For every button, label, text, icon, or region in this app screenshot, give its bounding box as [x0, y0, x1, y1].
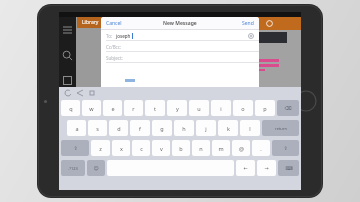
button[interactable]: Left [236, 160, 255, 176]
button[interactable]: p [255, 100, 275, 116]
button[interactable]: s [88, 120, 107, 136]
staticText: Library [82, 19, 99, 26]
staticText: r [132, 105, 135, 112]
staticText: p [263, 105, 267, 112]
button[interactable]: v [152, 140, 170, 156]
button[interactable]: Settings [266, 20, 273, 27]
button[interactable]: Shift [61, 140, 89, 156]
button[interactable]: l [240, 120, 260, 136]
button[interactable]: Menu [62, 25, 73, 36]
staticText: m [218, 145, 224, 152]
button[interactable]: x [112, 140, 130, 156]
staticText: z [99, 145, 102, 152]
button[interactable]: Undo [65, 90, 71, 96]
staticText: d [117, 125, 121, 132]
button[interactable]: Right [257, 160, 276, 176]
staticText: @ [239, 145, 244, 152]
button[interactable]: f [130, 120, 150, 136]
button[interactable]: Send [242, 20, 254, 27]
button[interactable]: n [192, 140, 210, 156]
staticText: f [139, 125, 141, 132]
button[interactable]: t [145, 100, 165, 116]
button[interactable]: b [172, 140, 190, 156]
button[interactable]: c [132, 140, 150, 156]
staticText: ⇧ [73, 145, 78, 151]
staticText: To: [106, 33, 113, 39]
staticText: c [140, 145, 143, 152]
staticText: ☺ [93, 165, 99, 171]
staticText: e [111, 105, 115, 112]
button[interactable]: Emoji [87, 160, 105, 176]
button[interactable]: Hide keyboard [278, 160, 299, 176]
button[interactable]: Favorites [62, 100, 73, 111]
button[interactable]: q [61, 100, 80, 116]
button[interactable]: @ [232, 140, 250, 156]
button[interactable]: Backspace [277, 100, 299, 116]
button[interactable]: y [167, 100, 187, 116]
staticText: . [260, 145, 262, 152]
staticText: w [89, 105, 94, 112]
button[interactable]: . [252, 140, 270, 156]
button[interactable]: .?123 [61, 160, 85, 176]
button[interactable]: Library [77, 17, 117, 28]
staticText: o [241, 105, 245, 112]
staticText: j [205, 125, 207, 132]
button[interactable]: Redo [77, 90, 83, 96]
staticText: i [220, 105, 222, 112]
button[interactable]: Cancel [106, 20, 122, 27]
button[interactable]: h [174, 120, 194, 136]
staticText: g [160, 125, 164, 132]
staticText: ⇧ [283, 145, 288, 151]
staticText: q [69, 105, 73, 112]
staticText: s [96, 125, 99, 132]
button[interactable]: w [82, 100, 101, 116]
staticText: New Message [163, 20, 197, 27]
button[interactable]: Add contact [248, 33, 254, 39]
staticText: Subject: [106, 55, 123, 61]
button[interactable]: m [212, 140, 230, 156]
button[interactable]: j [196, 120, 216, 136]
staticText: b [179, 145, 183, 152]
staticText: k [227, 125, 230, 132]
button[interactable]: Paste [89, 90, 95, 96]
button[interactable]: Home [295, 90, 317, 112]
button[interactable]: z [91, 140, 110, 156]
button[interactable]: Search [62, 50, 73, 61]
button[interactable]: d [109, 120, 128, 136]
button[interactable]: o [233, 100, 253, 116]
staticText: a [75, 125, 79, 132]
staticText: h [182, 125, 186, 132]
staticText: n [199, 145, 203, 152]
staticText: y [176, 105, 179, 112]
button[interactable]: r [124, 100, 143, 116]
button[interactable]: g [152, 120, 172, 136]
button[interactable]: i [211, 100, 231, 116]
button[interactable]: a [67, 120, 86, 136]
staticText: return [275, 126, 287, 131]
staticText: Cc/Bcc: [106, 44, 122, 50]
button[interactable]: return [262, 120, 299, 136]
button[interactable]: u [189, 100, 209, 116]
staticText: x [120, 145, 123, 152]
staticText: u [197, 105, 201, 112]
button[interactable]: k [218, 120, 238, 136]
button[interactable]: Documents [62, 75, 73, 86]
staticText: t [154, 105, 156, 112]
button[interactable]: To: [101, 30, 259, 41]
button[interactable]: Share [250, 20, 257, 27]
staticText: ← [243, 165, 248, 171]
staticText: joseph [116, 33, 131, 39]
button[interactable]: Subject: [101, 52, 259, 63]
button[interactable]: Cc/Bcc: [101, 41, 259, 52]
staticText: ⌨ [285, 165, 293, 171]
button[interactable]: Shift right [272, 140, 299, 156]
staticText: → [264, 165, 269, 171]
staticText: ⌫ [284, 105, 292, 111]
button[interactable]: e [103, 100, 122, 116]
staticText: .?123 [68, 166, 78, 171]
staticText: v [160, 145, 163, 152]
staticText: l [249, 125, 251, 132]
